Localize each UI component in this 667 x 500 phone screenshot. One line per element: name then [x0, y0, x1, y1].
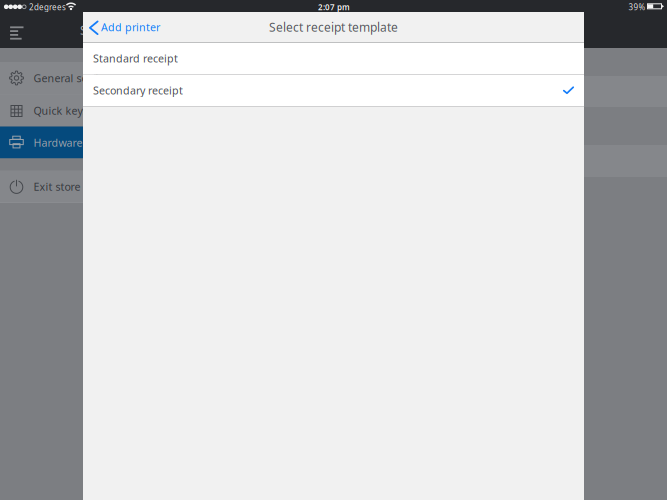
button[interactable]: General settings	[0, 62, 200, 94]
staticText: 39%	[628, 2, 645, 12]
staticText: Hardware	[33, 135, 82, 150]
button[interactable]: Hardware	[0, 126, 200, 158]
staticText: Add printer	[101, 20, 160, 34]
staticText: Quick keys	[33, 103, 87, 118]
staticText: Standard receipt	[93, 51, 178, 65]
staticText: Exit store	[33, 179, 80, 194]
button[interactable]: Standard receipt	[83, 42, 584, 74]
button[interactable]: Exit store	[0, 170, 200, 202]
button[interactable]: Add printer	[83, 13, 166, 41]
staticText: 2:07 pm	[318, 2, 350, 12]
staticText: General settings	[33, 71, 117, 85]
button[interactable]: Quick keys	[0, 94, 200, 126]
staticText: Secondary receipt	[93, 83, 183, 97]
staticText: 2degrees	[29, 2, 66, 12]
staticText: Select receipt template	[269, 19, 398, 35]
button[interactable]: Menu	[0, 12, 34, 48]
button[interactable]: Secondary receipt	[83, 74, 584, 106]
staticText: Select receipt template	[80, 22, 209, 38]
